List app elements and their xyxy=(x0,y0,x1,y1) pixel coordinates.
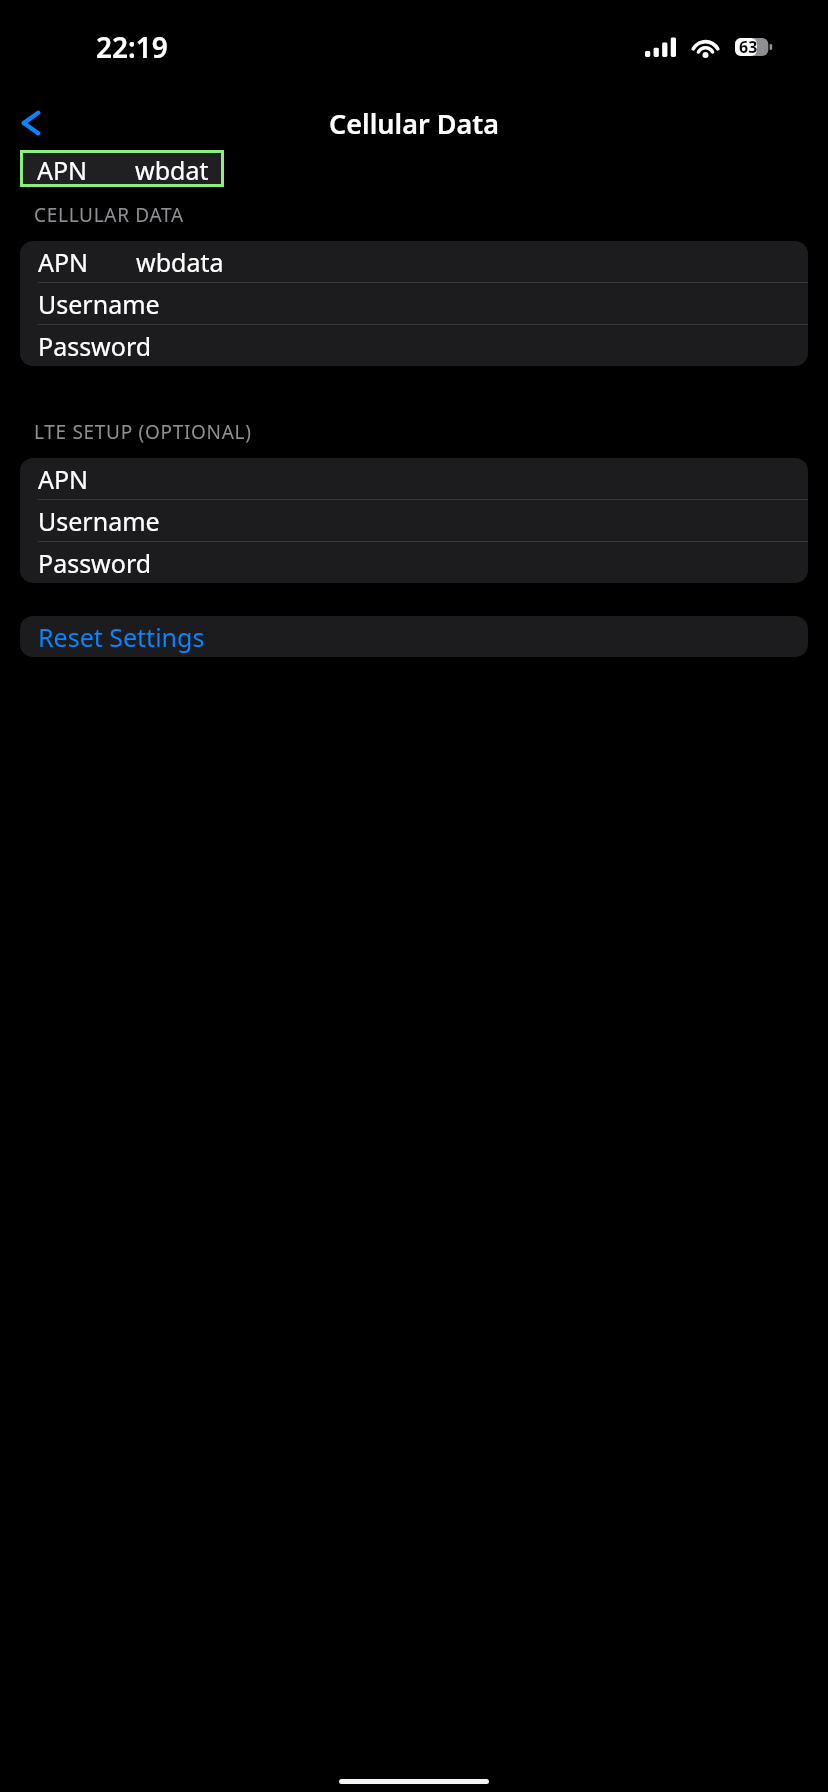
staticText: 22:19 xyxy=(96,28,168,66)
staticText: Password xyxy=(38,546,152,580)
button[interactable]: APN xyxy=(20,458,808,499)
button[interactable]: Password xyxy=(20,325,808,366)
staticText: wbdata xyxy=(135,153,221,184)
staticText: APN xyxy=(37,153,88,184)
staticText: CELLULAR DATA xyxy=(34,202,184,228)
button[interactable]: Back xyxy=(0,92,62,154)
staticText: Password xyxy=(38,329,152,363)
staticText: APN xyxy=(38,245,89,279)
button[interactable]: Username xyxy=(20,500,808,541)
staticText: 63 xyxy=(739,36,758,58)
button[interactable]: Username xyxy=(20,283,808,324)
button[interactable]: APN xyxy=(20,241,808,282)
staticText: wbdata xyxy=(136,245,224,279)
button[interactable]: Reset Settings xyxy=(20,616,808,657)
staticText: Username xyxy=(38,504,160,538)
staticText: APN xyxy=(38,462,89,496)
staticText: LTE SETUP (OPTIONAL) xyxy=(34,419,252,445)
staticText: Cellular Data xyxy=(329,105,500,142)
staticText: Reset Settings xyxy=(38,620,205,654)
button[interactable]: Password xyxy=(20,542,808,583)
staticText: Username xyxy=(38,287,160,321)
button[interactable]: APN xyxy=(20,150,224,187)
